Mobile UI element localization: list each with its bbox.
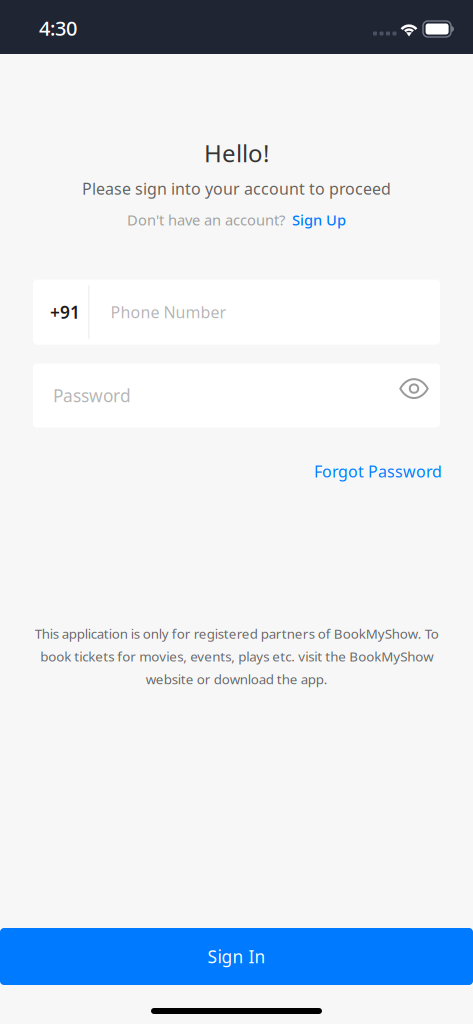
- button[interactable]: +91: [33, 280, 440, 345]
- staticText: +91: [50, 301, 80, 324]
- button[interactable]: Show password: [388, 370, 440, 421]
- staticText: Password: [53, 384, 131, 407]
- staticText: Please sign into your account to proceed: [82, 178, 391, 199]
- button[interactable]: Sign In: [0, 928, 473, 985]
- button[interactable]: Forgot Password: [314, 461, 442, 482]
- staticText: Don't have an account?: [127, 210, 285, 230]
- staticText: Hello!: [204, 137, 269, 169]
- staticText: This application is only for registered …: [34, 625, 438, 688]
- staticText: Sign Up: [292, 210, 346, 230]
- staticText: 4:30: [39, 15, 77, 41]
- staticText: Forgot Password: [314, 461, 442, 482]
- staticText: Phone Number: [110, 301, 226, 323]
- button[interactable]: Sign Up: [292, 210, 346, 230]
- staticText: Sign In: [207, 945, 265, 968]
